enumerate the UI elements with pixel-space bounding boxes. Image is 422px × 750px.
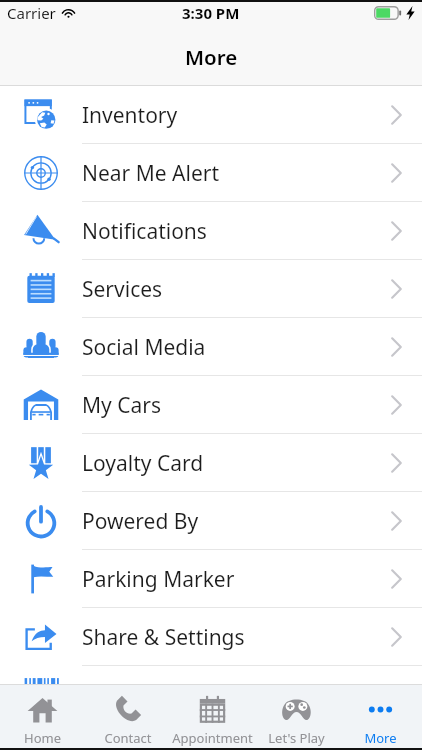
staticText: Appointment (172, 729, 253, 747)
button[interactable]: Services (0, 260, 422, 318)
button[interactable]: Near Me Alert (0, 144, 422, 202)
button[interactable]: Social Media (0, 318, 422, 376)
staticText: Parking Marker (82, 565, 235, 594)
staticText: Loyalty Card (82, 449, 204, 478)
staticText: Contact (104, 729, 152, 747)
staticText: More (185, 43, 238, 71)
staticText: Let's Play (268, 729, 325, 747)
staticText: Powered By (82, 507, 199, 536)
button[interactable]: Scan Barcode (0, 666, 422, 724)
button[interactable]: Share & Settings (0, 608, 422, 666)
staticText: More (364, 729, 397, 747)
staticText: Notifications (82, 217, 207, 246)
button[interactable]: Powered By (0, 492, 422, 550)
button[interactable]: Loyalty Card (0, 434, 422, 492)
staticText: Share & Settings (82, 623, 245, 652)
staticText: Home (24, 729, 61, 747)
staticText: Carrier (7, 3, 56, 23)
staticText: Services (82, 275, 163, 304)
staticText: Social Media (82, 333, 206, 362)
staticText: 3:30 PM (182, 3, 240, 23)
staticText: Inventory (82, 101, 178, 130)
button[interactable]: Home (0, 685, 85, 750)
button[interactable]: Notifications (0, 202, 422, 260)
button[interactable]: Inventory (0, 86, 422, 144)
button[interactable]: More (338, 685, 422, 750)
button[interactable]: Parking Marker (0, 550, 422, 608)
button[interactable]: Let's Play (254, 685, 338, 750)
staticText: Near Me Alert (82, 159, 220, 188)
button[interactable]: Appointment (170, 685, 254, 750)
staticText: My Cars (82, 391, 162, 420)
staticText: Scan Barcode (82, 681, 216, 710)
button[interactable]: My Cars (0, 376, 422, 434)
button[interactable]: Contact (85, 685, 170, 750)
